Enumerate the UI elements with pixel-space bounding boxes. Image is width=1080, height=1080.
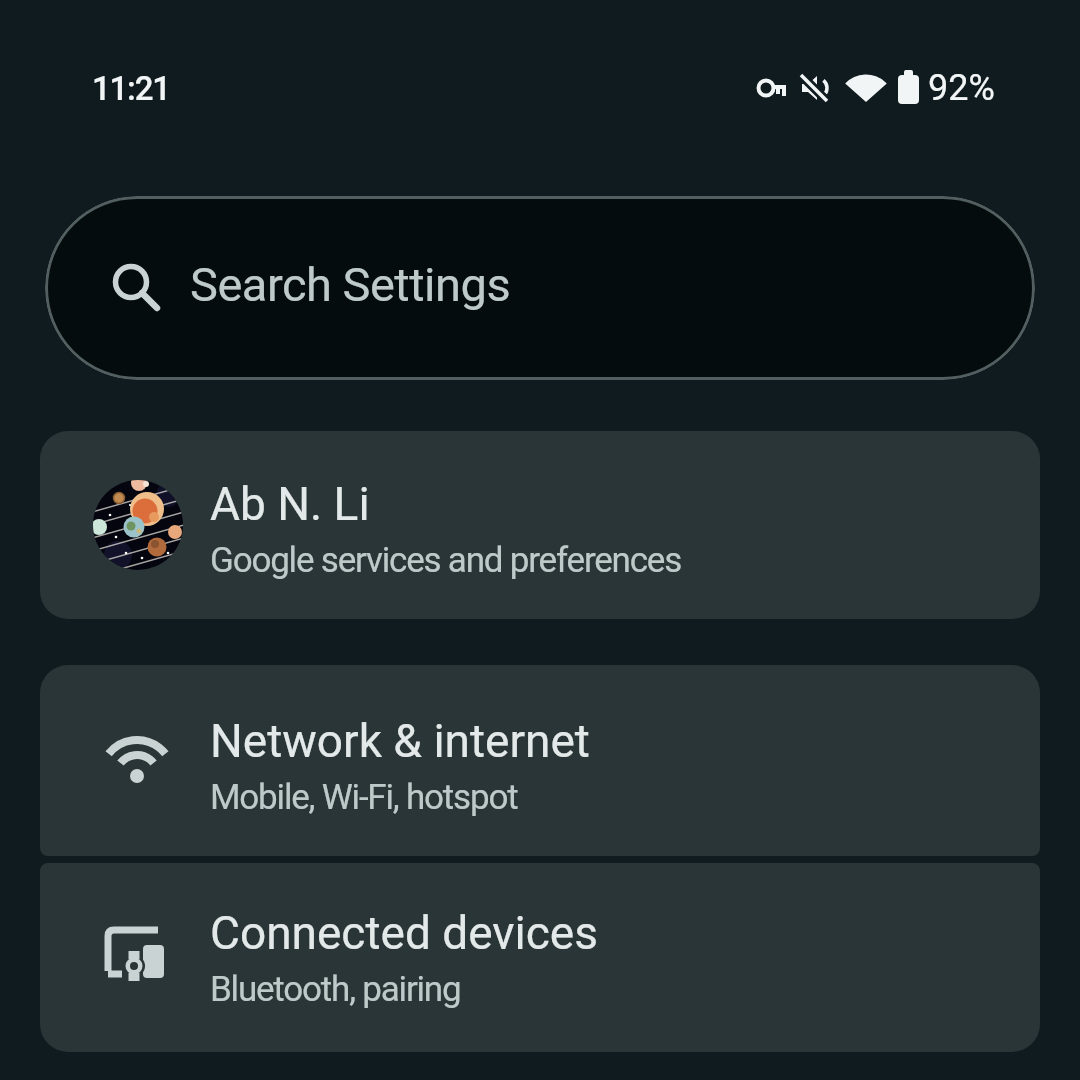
staticText: Network & internet xyxy=(210,714,590,768)
staticText: Mobile, Wi-Fi, hotspot xyxy=(210,777,518,818)
staticText: Connected devices xyxy=(210,906,598,960)
button[interactable]: Connected devices xyxy=(40,863,1040,1052)
staticText: Google services and preferences xyxy=(210,540,682,581)
button[interactable]: Network & internet xyxy=(40,665,1040,856)
button[interactable]: Search Settings xyxy=(45,196,1035,380)
staticText: Ab N. Li xyxy=(210,477,370,531)
staticText: Search Settings xyxy=(190,257,511,312)
button[interactable]: Ab N. Li xyxy=(40,431,1040,619)
staticText: Bluetooth, pairing xyxy=(210,969,461,1010)
staticText: 11:21 xyxy=(92,69,170,108)
staticText: 92% xyxy=(928,67,995,109)
